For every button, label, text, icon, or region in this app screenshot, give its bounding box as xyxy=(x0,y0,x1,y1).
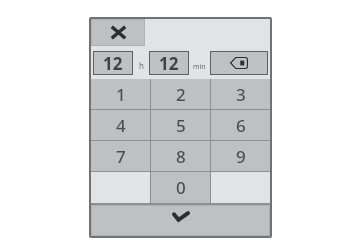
button[interactable]: 9 xyxy=(211,141,270,171)
button[interactable]: 8 xyxy=(151,141,210,171)
staticText: 5 xyxy=(176,114,186,137)
button[interactable]: 0 xyxy=(151,172,210,203)
staticText: 3 xyxy=(236,83,246,106)
staticText: 8 xyxy=(176,145,186,168)
button[interactable]: 12 xyxy=(150,52,188,74)
staticText: h xyxy=(139,60,144,71)
staticText: 7 xyxy=(116,145,126,168)
button[interactable]: Backspace xyxy=(211,52,267,74)
staticText: 12 xyxy=(103,52,123,74)
staticText: 0 xyxy=(176,176,186,199)
button[interactable]: 7 xyxy=(91,141,150,171)
staticText: 1 xyxy=(116,83,126,106)
button[interactable]: Confirm xyxy=(92,206,269,235)
button[interactable]: 12 xyxy=(94,52,132,74)
staticText: 12 xyxy=(159,52,179,74)
staticText: min xyxy=(193,62,206,72)
button[interactable]: 2 xyxy=(151,79,210,109)
button[interactable]: 4 xyxy=(91,110,150,140)
button[interactable]: 3 xyxy=(211,79,270,109)
button[interactable]: 6 xyxy=(211,110,270,140)
button[interactable]: Close xyxy=(92,20,144,45)
button[interactable]: 5 xyxy=(151,110,210,140)
button[interactable]: 1 xyxy=(91,79,150,109)
staticText: 2 xyxy=(176,83,186,106)
staticText: 6 xyxy=(236,114,246,137)
staticText: 4 xyxy=(116,114,126,137)
staticText: 9 xyxy=(236,145,246,168)
